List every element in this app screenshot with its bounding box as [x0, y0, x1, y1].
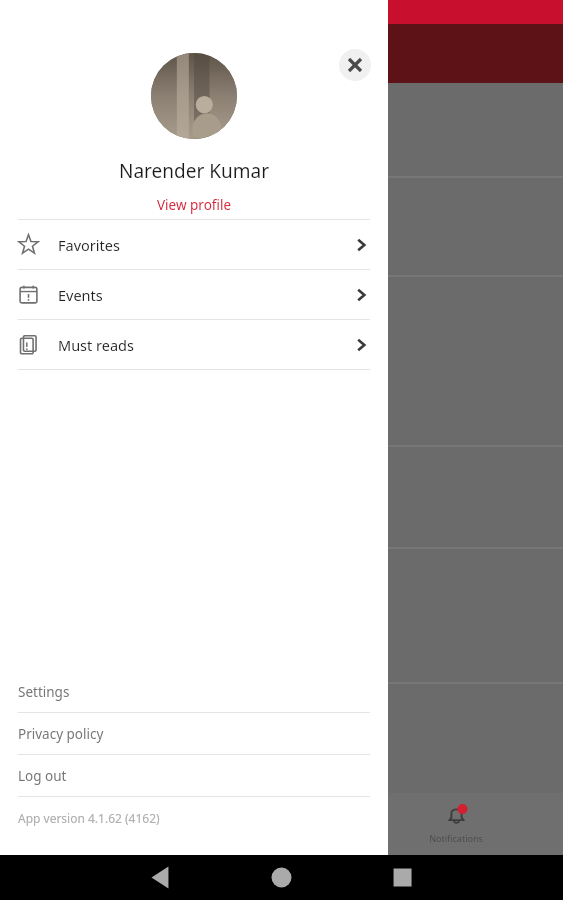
staticText: View profile — [157, 196, 232, 214]
staticText: Events — [58, 285, 103, 305]
button[interactable]: Home — [74, 800, 112, 848]
staticText: Notifications — [429, 832, 483, 844]
staticText: Favorites — [58, 235, 120, 255]
staticText: Log out — [18, 767, 67, 785]
button[interactable] — [151, 53, 237, 139]
button[interactable]: Privacy policy — [0, 713, 388, 754]
button[interactable]: Log out — [0, 755, 388, 796]
button[interactable]: View profile — [151, 194, 238, 216]
staticText: Narender Kumar — [119, 158, 269, 184]
staticText: Privacy policy — [18, 725, 104, 743]
staticText: Must reads — [58, 335, 134, 355]
button[interactable]: Must reads — [0, 320, 388, 369]
button[interactable]: Events — [0, 270, 388, 319]
staticText: App version 4.1.62 (4162) — [18, 810, 160, 826]
button[interactable]: Close — [339, 49, 371, 81]
button[interactable]: Settings — [0, 671, 388, 712]
button[interactable]: Favorites — [0, 220, 388, 269]
staticText: Settings — [18, 683, 70, 701]
button[interactable]: Notifications — [423, 800, 489, 848]
